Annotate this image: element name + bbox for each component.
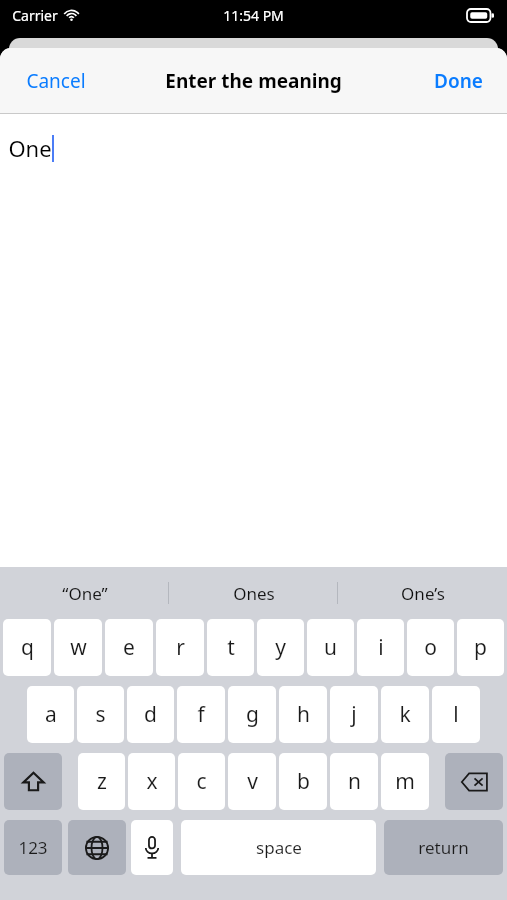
button[interactable]: j [330,686,378,743]
button[interactable]: v [228,753,276,810]
staticText: o [424,633,437,662]
staticText: i [378,633,384,662]
button[interactable]: k [381,686,429,743]
button[interactable]: d [127,686,174,743]
staticText: return [418,836,469,859]
button[interactable]: f [177,686,225,743]
staticText: p [474,633,487,662]
staticText: Ones [233,582,275,605]
button[interactable]: r [156,619,204,676]
button[interactable]: u [307,619,354,676]
button[interactable]: x [128,753,175,810]
button[interactable]: One [0,114,507,567]
staticText: 123 [18,836,48,859]
staticText: j [351,700,357,729]
staticText: c [196,767,207,796]
button[interactable]: Switch keyboard [68,820,126,875]
staticText: t [227,633,235,662]
staticText: h [297,700,310,729]
button[interactable]: t [207,619,254,676]
button[interactable]: z [78,753,125,810]
button[interactable]: Cancel [0,48,112,113]
staticText: k [399,700,411,729]
button[interactable]: p [457,619,504,676]
staticText: m [395,767,415,796]
staticText: f [197,700,205,729]
button[interactable]: b [279,753,327,810]
staticText: y [275,633,286,662]
staticText: v [247,767,258,796]
button[interactable]: return [384,820,503,875]
staticText: e [123,633,135,662]
button[interactable]: a [27,686,74,743]
button[interactable]: q [3,619,51,676]
button[interactable]: One’s [338,567,507,619]
staticText: One [8,133,52,163]
button[interactable]: e [105,619,153,676]
staticText: s [95,700,106,729]
staticText: Done [434,68,483,94]
staticText: Carrier [12,6,58,25]
button[interactable]: c [178,753,225,810]
staticText: One’s [401,582,445,605]
button[interactable]: y [257,619,304,676]
button[interactable]: m [381,753,429,810]
staticText: “One” [62,582,108,605]
button[interactable]: Ones [169,567,338,619]
staticText: u [324,633,337,662]
button[interactable]: Shift [4,753,62,810]
button[interactable]: 123 [4,820,62,875]
button[interactable]: Backspace [445,753,503,810]
button[interactable]: n [330,753,378,810]
button[interactable]: h [279,686,327,743]
staticText: w [70,633,87,662]
staticText: d [144,700,157,729]
staticText: x [146,767,158,796]
button[interactable]: s [77,686,124,743]
button[interactable]: l [432,686,480,743]
button[interactable]: g [228,686,276,743]
staticText: Cancel [26,68,86,94]
staticText: r [176,633,185,662]
staticText: z [97,767,107,796]
staticText: n [348,767,361,796]
button[interactable]: Done [410,48,507,113]
staticText: g [246,700,259,729]
button[interactable]: Dictate [131,820,173,875]
staticText: space [256,836,302,859]
button[interactable]: w [54,619,102,676]
button[interactable]: o [407,619,454,676]
button[interactable]: i [357,619,404,676]
staticText: 11:54 PM [223,6,284,25]
staticText: l [453,700,459,729]
staticText: q [21,633,34,662]
button[interactable]: “One” [0,567,169,619]
staticText: Enter the meaning [165,68,342,94]
button[interactable]: space [181,820,376,875]
staticText: a [45,700,57,729]
staticText: b [297,767,310,796]
